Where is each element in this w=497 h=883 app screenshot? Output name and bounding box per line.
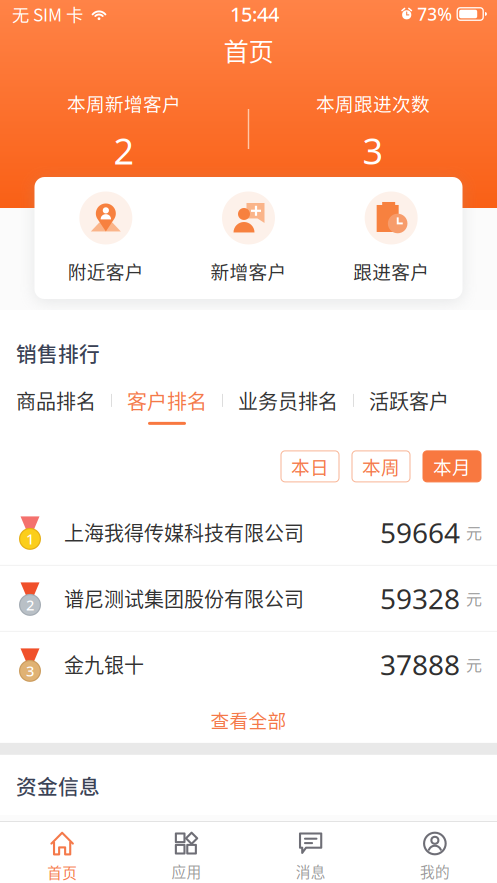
- button[interactable]: 我的: [373, 822, 497, 882]
- button[interactable]: 1: [0, 500, 497, 565]
- staticText: 本周新增客户: [67, 90, 181, 117]
- staticText: 销售排行: [16, 338, 100, 368]
- button[interactable]: 新增客户: [177, 177, 320, 299]
- staticText: 应用: [171, 860, 201, 882]
- staticText: 2: [26, 595, 34, 615]
- staticText: 金九银十: [64, 650, 144, 679]
- button[interactable]: 查看全部: [0, 697, 497, 743]
- staticText: 37888: [380, 646, 460, 683]
- staticText: 本周跟进次数: [316, 90, 430, 117]
- staticText: 本日: [291, 453, 329, 480]
- staticText: 资金信息: [16, 771, 100, 801]
- staticText: 业务员排名: [238, 386, 338, 415]
- staticText: 新增客户: [210, 257, 286, 284]
- staticText: 活跃客户: [369, 386, 449, 415]
- button[interactable]: 本日: [281, 451, 339, 482]
- staticText: 商品排名: [16, 386, 96, 415]
- button[interactable]: 本周: [352, 451, 410, 482]
- button[interactable]: 活跃客户: [369, 386, 449, 425]
- button[interactable]: 3: [0, 632, 497, 697]
- button[interactable]: 2: [0, 566, 497, 631]
- staticText: 元: [466, 653, 482, 676]
- staticText: 15:44: [230, 1, 279, 27]
- staticText: 元: [466, 587, 482, 610]
- staticText: 客户排名: [127, 386, 207, 415]
- button[interactable]: 客户排名: [127, 386, 207, 425]
- button[interactable]: 消息: [248, 822, 373, 882]
- staticText: 59664: [380, 514, 460, 551]
- staticText: 附近客户: [68, 257, 144, 284]
- button[interactable]: 首页: [0, 822, 124, 882]
- button[interactable]: 附近客户: [34, 177, 177, 299]
- staticText: 本月: [433, 453, 471, 480]
- staticText: 跟进客户: [353, 257, 429, 284]
- staticText: 本周: [362, 453, 400, 480]
- staticText: 73%: [417, 2, 452, 25]
- staticText: 消息: [296, 860, 326, 882]
- button[interactable]: 应用: [124, 822, 248, 882]
- button[interactable]: 本月: [423, 451, 481, 482]
- staticText: 3: [362, 127, 383, 174]
- staticText: 元: [466, 521, 482, 544]
- staticText: 首页: [223, 32, 273, 68]
- staticText: 查看全部: [210, 706, 286, 733]
- staticText: 2: [113, 127, 134, 174]
- staticText: 我的: [420, 860, 450, 882]
- staticText: 1: [26, 529, 34, 549]
- button[interactable]: 跟进客户: [320, 177, 462, 299]
- staticText: 谱尼测试集团股份有限公司: [64, 584, 304, 613]
- button[interactable]: 业务员排名: [238, 386, 338, 425]
- staticText: 上海我得传媒科技有限公司: [64, 518, 304, 547]
- staticText: 3: [26, 661, 34, 681]
- staticText: 59328: [380, 580, 460, 617]
- staticText: 首页: [47, 861, 77, 883]
- staticText: 无 SIM 卡: [12, 1, 83, 27]
- button[interactable]: 商品排名: [16, 386, 96, 425]
